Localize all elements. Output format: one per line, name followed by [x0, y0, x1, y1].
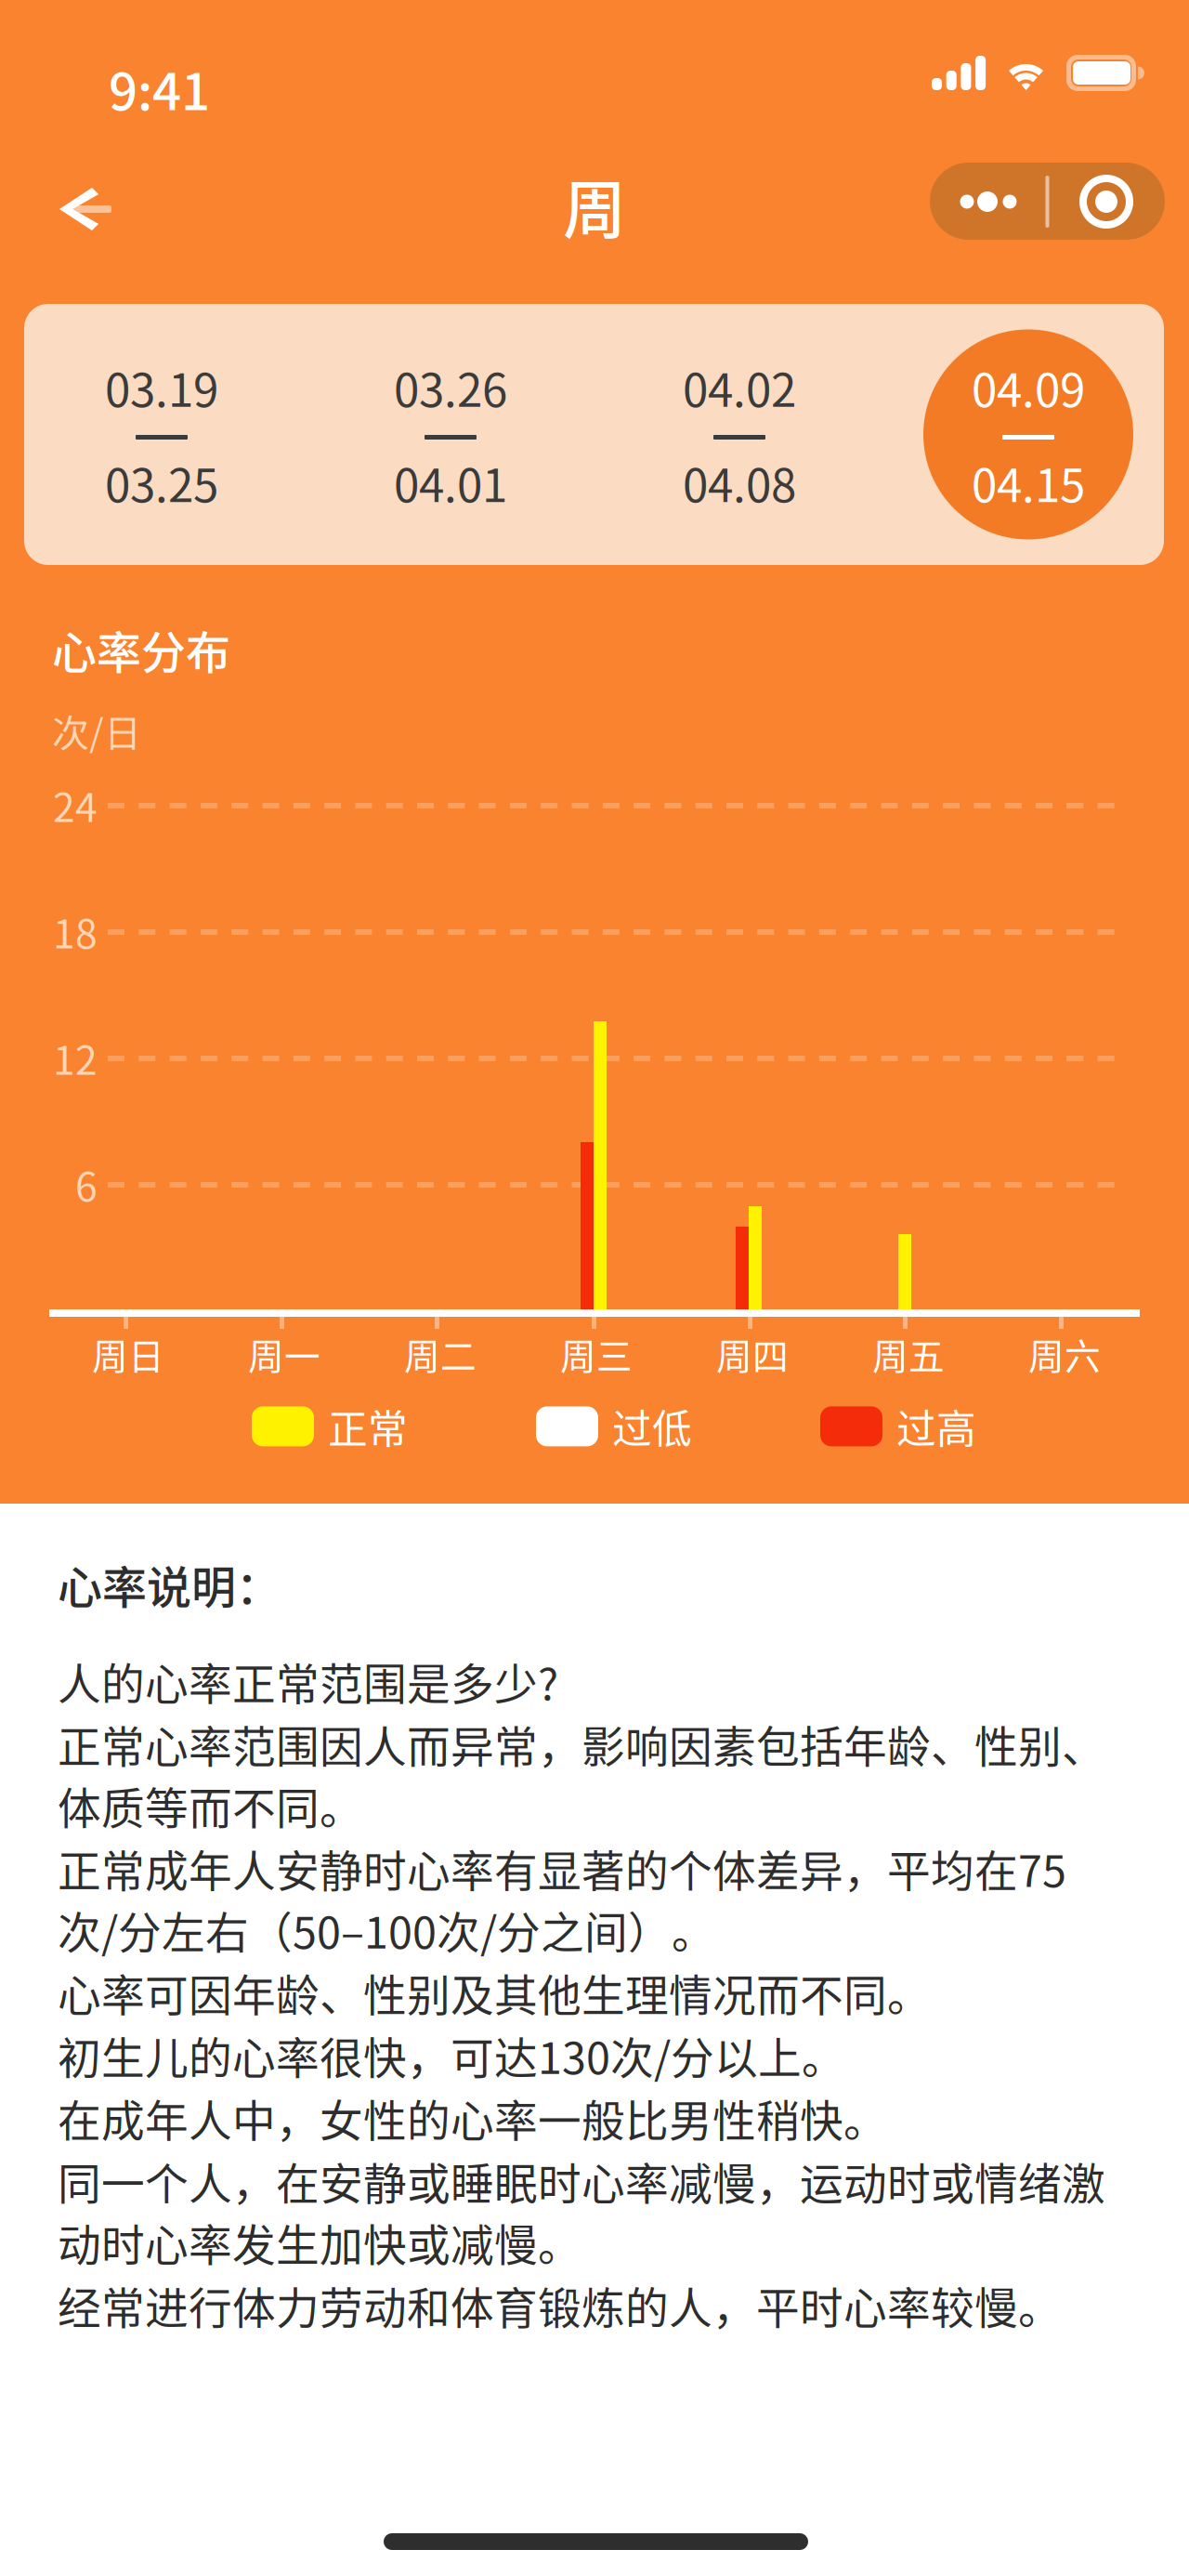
- staticText: 9:41: [109, 51, 210, 125]
- staticText: 04.15: [972, 449, 1085, 515]
- button[interactable]: 03.19: [57, 329, 267, 539]
- staticText: 次/日: [52, 703, 141, 757]
- staticText: 04.01: [394, 449, 507, 515]
- button[interactable]: 04.02: [634, 329, 844, 539]
- staticText: 心率可因年龄、性别及其他生理情况而不同。: [58, 1961, 931, 2024]
- staticText: 周六: [1028, 1328, 1101, 1380]
- staticText: 03.25: [105, 449, 218, 515]
- staticText: 04.09: [972, 354, 1085, 420]
- button[interactable]: 更多: [930, 163, 1165, 240]
- staticText: 04.02: [683, 354, 796, 420]
- staticText: 正常成年人安静时心率有显著的个体差异，平均在75次/分左右（50–100次/分之…: [58, 1837, 1066, 1961]
- staticText: 周四: [716, 1328, 789, 1380]
- staticText: 同一个人，在安静或睡眠时心率减慢，运动时或情绪激动时心率发生加快或减慢。: [58, 2149, 1105, 2274]
- staticText: 18: [53, 902, 98, 960]
- button[interactable]: 返回: [24, 164, 137, 254]
- staticText: 过高: [896, 1398, 976, 1455]
- staticText: 周三: [560, 1328, 633, 1380]
- staticText: 在成年人中，女性的心率一般比男性稍快。: [58, 2086, 887, 2149]
- staticText: 周二: [404, 1328, 477, 1380]
- staticText: 心率说明：: [58, 1552, 281, 1617]
- button[interactable]: 03.26: [346, 329, 555, 539]
- staticText: 周: [563, 160, 626, 251]
- staticText: 正常心率范围因人而异常，影响因素包括年龄、性别、体质等而不同。: [58, 1712, 1105, 1837]
- staticText: 周五: [872, 1328, 945, 1380]
- staticText: 03.26: [394, 354, 507, 420]
- button[interactable]: 04.09: [923, 329, 1133, 539]
- staticText: 心率分布: [52, 617, 230, 682]
- staticText: 周一: [248, 1328, 320, 1380]
- staticText: 周日: [92, 1328, 164, 1380]
- staticText: 24: [53, 776, 98, 833]
- staticText: 正常: [328, 1398, 408, 1455]
- staticText: 04.08: [683, 449, 796, 515]
- staticText: 6: [75, 1155, 98, 1213]
- staticText: 过低: [612, 1398, 692, 1455]
- staticText: 03.19: [105, 354, 218, 420]
- staticText: 人的心率正常范围是多少?: [58, 1649, 558, 1712]
- staticText: 经常进行体力劳动和体育锻炼的人，平时心率较慢。: [58, 2274, 1062, 2336]
- staticText: 初生儿的心率很快，可达130次/分以上。: [58, 2024, 845, 2086]
- staticText: 12: [53, 1029, 98, 1086]
